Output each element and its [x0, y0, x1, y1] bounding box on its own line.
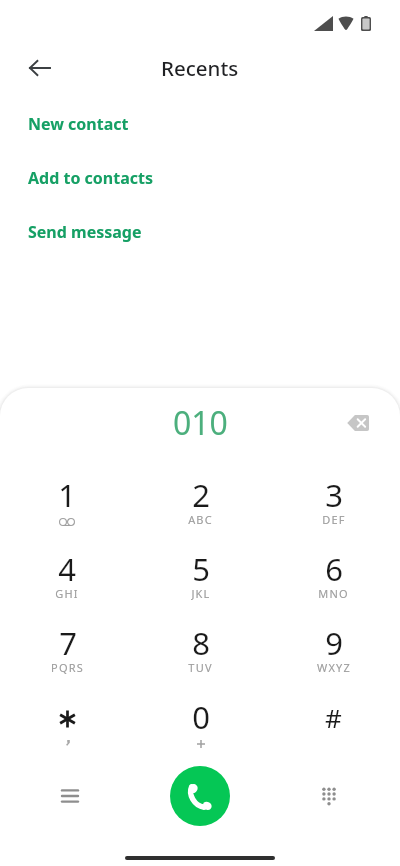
button[interactable]: Backspace — [338, 403, 378, 443]
button[interactable] — [0, 696, 134, 770]
staticText: PQRS — [51, 660, 84, 674]
staticText: JKL — [191, 586, 211, 600]
staticText: 2 — [192, 474, 210, 512]
staticText: DEF — [322, 512, 346, 526]
staticText: MNO — [318, 586, 349, 600]
staticText: 5 — [192, 548, 210, 586]
button[interactable]: Call log — [48, 774, 92, 818]
staticText: 9 — [325, 622, 343, 660]
staticText: 0 — [192, 696, 210, 734]
staticText: 7 — [59, 622, 77, 660]
staticText: TUV — [188, 660, 213, 674]
button[interactable]: 2 — [134, 474, 267, 548]
staticText: 6 — [325, 548, 343, 586]
staticText: 010 — [173, 401, 228, 445]
button[interactable]: 0 — [134, 696, 267, 770]
button[interactable]: Dialpad — [307, 774, 351, 818]
button[interactable]: 9 — [267, 622, 400, 696]
staticText: ABC — [188, 512, 213, 526]
staticText: New contact — [28, 113, 129, 135]
button[interactable]: Add to contacts — [0, 151, 400, 205]
button[interactable]: 7 — [0, 622, 134, 696]
staticText: 1 — [58, 474, 76, 512]
staticText: GHI — [55, 586, 79, 600]
button[interactable]: Call — [170, 766, 230, 826]
staticText: 3 — [325, 474, 343, 512]
staticText: Add to contacts — [28, 167, 153, 189]
staticText: WXYZ — [317, 660, 351, 674]
button[interactable]: 6 — [267, 548, 400, 622]
staticText: 4 — [58, 548, 76, 586]
staticText: Send message — [28, 221, 142, 243]
button[interactable]: 8 — [134, 622, 267, 696]
button[interactable]: New contact — [0, 97, 400, 151]
staticText: 8 — [192, 622, 210, 660]
button[interactable]: 3 — [267, 474, 400, 548]
button[interactable]: # — [267, 696, 400, 770]
button[interactable]: 1 — [0, 474, 134, 548]
button[interactable]: 5 — [134, 548, 267, 622]
staticText: # — [325, 700, 342, 735]
staticText: Recents — [161, 54, 239, 82]
button[interactable]: Send message — [0, 205, 400, 259]
button[interactable]: 4 — [0, 548, 134, 622]
button[interactable]: Back — [18, 47, 60, 89]
